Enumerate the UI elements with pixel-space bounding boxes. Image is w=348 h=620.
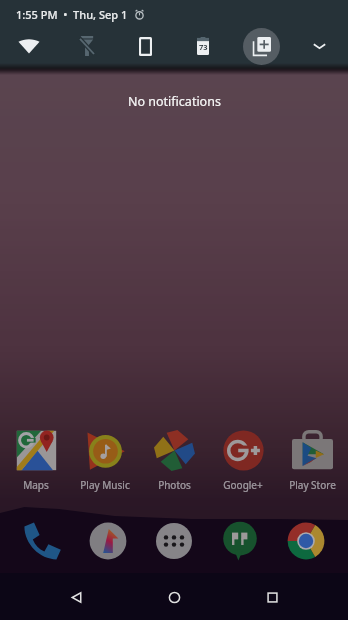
button[interactable]: Snapseed — [84, 517, 132, 565]
button[interactable]: Auto-rotate — [116, 24, 174, 68]
staticText: Maps — [23, 478, 49, 492]
button[interactable]: Chrome — [282, 517, 330, 565]
button[interactable]: Wi-Fi — [0, 24, 58, 68]
button[interactable]: Google+ — [210, 425, 276, 492]
button[interactable]: Expand — [290, 24, 348, 68]
staticText: Play Music — [80, 478, 130, 492]
staticText: Photos — [158, 478, 191, 492]
staticText: 1:55 PM • Thu, Sep 1 — [16, 7, 128, 22]
button[interactable]: Play Store — [279, 425, 345, 492]
button[interactable]: Recents — [250, 575, 294, 619]
button[interactable]: Hangouts — [216, 517, 264, 565]
button[interactable]: Photos — [141, 425, 207, 492]
button[interactable]: Maps — [3, 425, 69, 492]
button[interactable]: Home — [152, 575, 196, 619]
button[interactable]: Add — [232, 24, 290, 68]
staticText: Play Store — [289, 478, 336, 492]
staticText: No notifications — [128, 93, 221, 110]
staticText: 73 — [199, 42, 208, 52]
button[interactable]: Play Music — [72, 425, 138, 492]
button[interactable]: Battery 73 percent — [174, 24, 232, 68]
button[interactable]: Phone — [18, 517, 66, 565]
button[interactable]: Back — [54, 575, 98, 619]
button[interactable]: Flashlight — [58, 24, 116, 68]
staticText: Google+ — [223, 478, 263, 492]
button[interactable]: All apps — [150, 517, 198, 565]
